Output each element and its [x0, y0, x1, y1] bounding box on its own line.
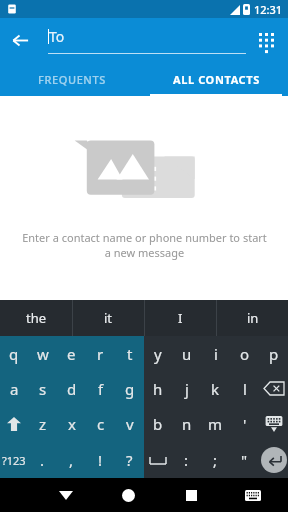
staticText: s: [39, 379, 47, 399]
staticText: ': [243, 414, 247, 434]
button[interactable]: a: [0, 371, 28, 406]
staticText: :: [184, 450, 189, 470]
button[interactable]: v: [115, 406, 144, 442]
button[interactable]: Back: [0, 20, 40, 60]
button[interactable]: w: [28, 336, 57, 371]
button[interactable]: :: [172, 442, 201, 478]
staticText: p: [269, 344, 279, 364]
staticText: e: [67, 344, 76, 364]
staticText: !: [98, 450, 103, 470]
staticText: ?: [126, 450, 133, 470]
button[interactable]: Dialpad: [248, 22, 284, 58]
button[interactable]: Recents: [160, 478, 223, 512]
button[interactable]: s: [28, 371, 57, 406]
button[interactable]: p: [259, 336, 288, 371]
button[interactable]: ": [230, 442, 259, 478]
staticText: ,: [69, 450, 74, 470]
button[interactable]: Switch keyboard: [223, 478, 282, 512]
staticText: m: [208, 414, 223, 434]
staticText: v: [126, 414, 134, 434]
staticText: h: [153, 379, 163, 399]
button[interactable]: Shift: [0, 406, 28, 442]
staticText: u: [182, 344, 192, 364]
button[interactable]: Backspace: [259, 371, 288, 406]
button[interactable]: z: [28, 406, 57, 442]
button[interactable]: ALL CONTACTS: [144, 62, 288, 96]
staticText: ALL CONTACTS: [173, 72, 260, 87]
button[interactable]: Back: [34, 478, 97, 512]
staticText: g: [125, 379, 135, 399]
button[interactable]: q: [0, 336, 28, 371]
staticText: I: [178, 309, 183, 327]
button[interactable]: u: [172, 336, 201, 371]
button[interactable]: the: [0, 300, 72, 336]
staticText: l: [243, 379, 247, 399]
button[interactable]: ': [230, 406, 259, 442]
button[interactable]: Home: [97, 478, 160, 512]
button[interactable]: x: [57, 406, 86, 442]
button[interactable]: n: [172, 406, 201, 442]
button[interactable]: o: [230, 336, 259, 371]
button[interactable]: h: [144, 371, 172, 406]
button[interactable]: j: [172, 371, 201, 406]
staticText: y: [154, 344, 162, 364]
button[interactable]: g: [115, 371, 144, 406]
staticText: r: [97, 344, 104, 364]
button[interactable]: it: [73, 300, 144, 336]
staticText: k: [211, 379, 220, 399]
staticText: n: [182, 414, 192, 434]
staticText: t: [127, 344, 133, 364]
button[interactable]: i: [201, 336, 230, 371]
staticText: To: [49, 27, 65, 46]
button[interactable]: m: [201, 406, 230, 442]
button[interactable]: Space: [144, 442, 172, 478]
button[interactable]: f: [86, 371, 115, 406]
button[interactable]: y: [144, 336, 172, 371]
staticText: q: [9, 344, 19, 364]
button[interactable]: Enter: [259, 442, 288, 478]
button[interactable]: e: [57, 336, 86, 371]
staticText: ?123: [2, 453, 26, 468]
button[interactable]: ?123: [0, 442, 28, 478]
staticText: w: [37, 344, 49, 364]
button[interactable]: ,: [57, 442, 86, 478]
button[interactable]: k: [201, 371, 230, 406]
staticText: i: [214, 344, 218, 364]
staticText: in: [247, 309, 259, 327]
button[interactable]: b: [144, 406, 172, 442]
staticText: Enter a contact name or phone number to …: [22, 230, 267, 260]
staticText: f: [98, 379, 104, 399]
button[interactable]: d: [57, 371, 86, 406]
staticText: d: [67, 379, 77, 399]
button[interactable]: ?: [115, 442, 144, 478]
staticText: 12:31: [254, 2, 283, 17]
staticText: o: [240, 344, 250, 364]
button[interactable]: FREQUENTS: [0, 62, 144, 96]
button[interactable]: I: [145, 300, 216, 336]
staticText: ;: [213, 450, 218, 470]
button[interactable]: c: [86, 406, 115, 442]
button[interactable]: Hide keyboard: [259, 406, 288, 442]
button[interactable]: .: [28, 442, 57, 478]
staticText: a: [10, 379, 19, 399]
staticText: FREQUENTS: [38, 72, 106, 87]
staticText: c: [97, 414, 105, 434]
button[interactable]: r: [86, 336, 115, 371]
staticText: b: [153, 414, 163, 434]
staticText: the: [26, 309, 47, 327]
staticText: z: [39, 414, 47, 434]
staticText: .: [40, 450, 45, 470]
button[interactable]: !: [86, 442, 115, 478]
staticText: j: [185, 379, 189, 399]
button[interactable]: l: [230, 371, 259, 406]
button[interactable]: ;: [201, 442, 230, 478]
staticText: x: [68, 414, 76, 434]
staticText: ": [241, 450, 248, 470]
staticText: it: [104, 309, 113, 327]
button[interactable]: t: [115, 336, 144, 371]
button[interactable]: in: [217, 300, 288, 336]
